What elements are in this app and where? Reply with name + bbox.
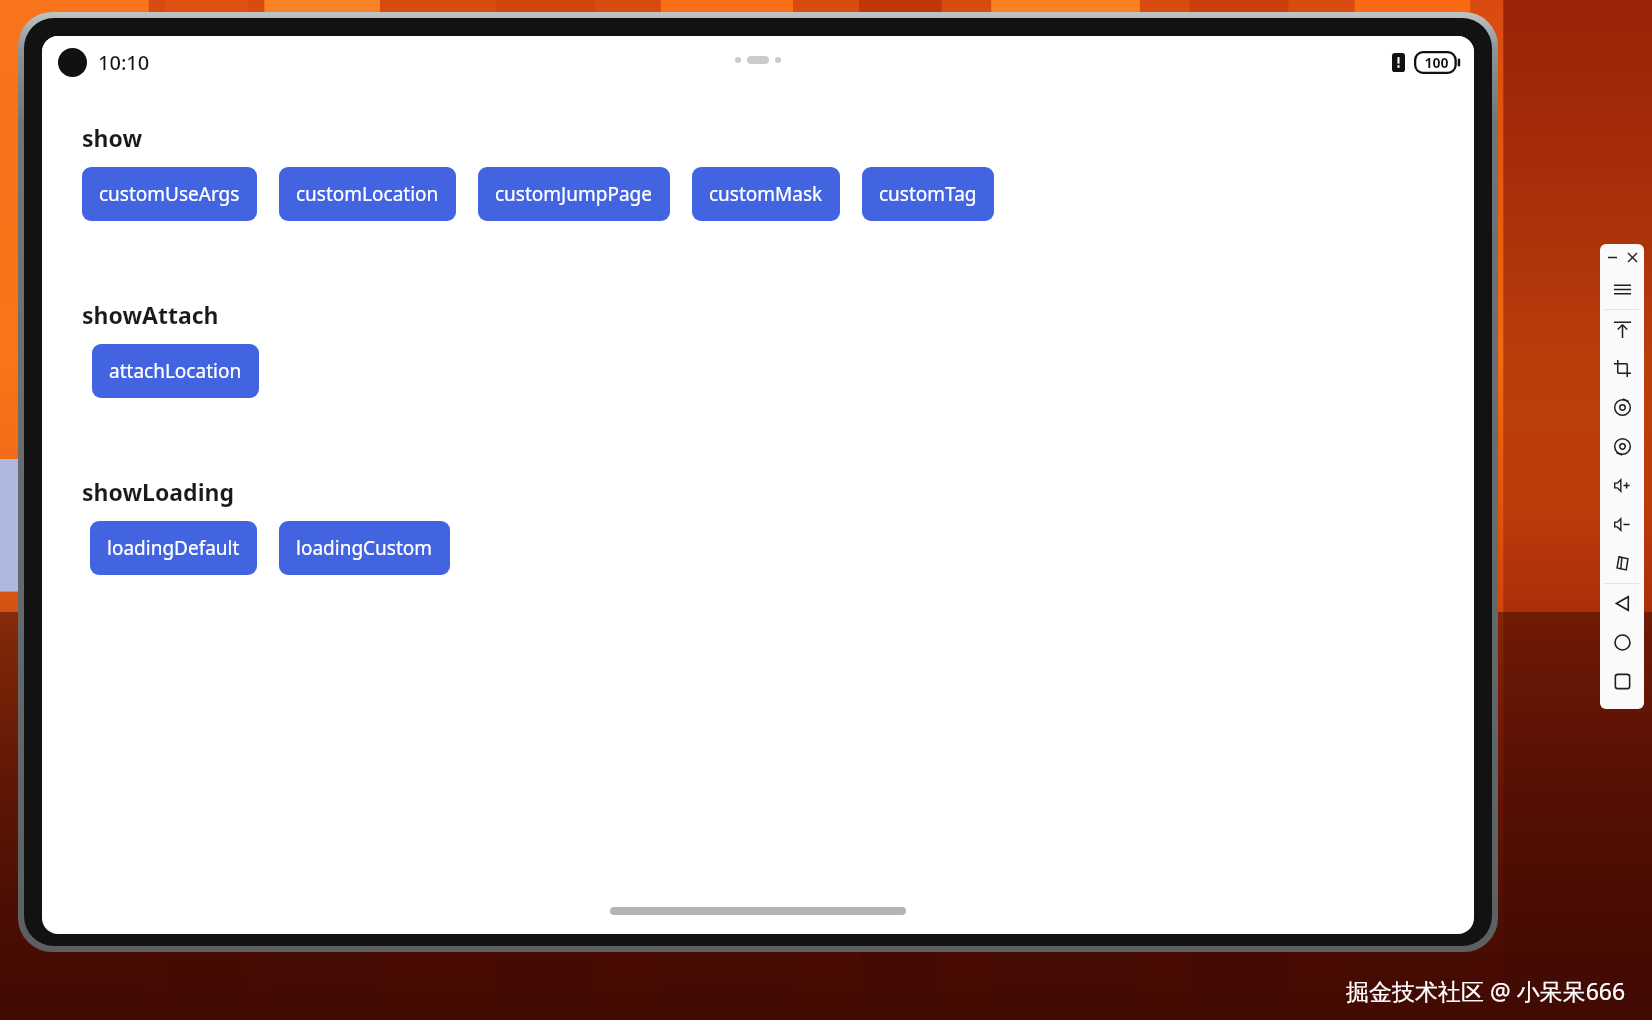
button[interactable]: customTag: [862, 167, 994, 221]
staticText: show: [82, 122, 143, 153]
button[interactable]: customMask: [692, 167, 840, 221]
button[interactable]: Recents: [1600, 662, 1644, 701]
button[interactable]: Menu: [1600, 270, 1644, 309]
staticText: customTag: [879, 181, 977, 207]
staticText: loadingCustom: [296, 535, 433, 561]
button[interactable]: customLocation: [279, 167, 456, 221]
staticText: customUseArgs: [99, 181, 240, 207]
staticText: showAttach: [82, 299, 219, 330]
staticText: 掘金技术社区 @ 小呆呆666: [1346, 975, 1626, 1006]
button[interactable]: Minimize: [1604, 249, 1620, 265]
staticText: customMask: [709, 181, 823, 207]
button[interactable]: Close: [1624, 249, 1640, 265]
staticText: customLocation: [296, 181, 439, 207]
button[interactable]: Volume down: [1600, 505, 1644, 544]
staticText: 10:10: [98, 49, 150, 76]
button[interactable]: App switch: [1600, 544, 1644, 583]
button[interactable]: Volume up: [1600, 466, 1644, 505]
button[interactable]: Push file: [1600, 310, 1644, 349]
button[interactable]: Rotate left: [1600, 388, 1644, 427]
staticText: showLoading: [82, 476, 235, 507]
button[interactable]: attachLocation: [92, 344, 259, 398]
button[interactable]: Back: [1600, 584, 1644, 623]
staticText: 100: [1424, 53, 1449, 72]
button[interactable]: Rotate right: [1600, 427, 1644, 466]
button[interactable]: customJumpPage: [478, 167, 670, 221]
button[interactable]: loadingDefault: [90, 521, 257, 575]
button[interactable]: customUseArgs: [82, 167, 257, 221]
button[interactable]: loadingCustom: [279, 521, 450, 575]
button[interactable]: Home: [1600, 623, 1644, 662]
staticText: attachLocation: [109, 358, 242, 384]
button[interactable]: Crop: [1600, 349, 1644, 388]
staticText: customJumpPage: [495, 181, 653, 207]
staticText: loadingDefault: [107, 535, 240, 561]
